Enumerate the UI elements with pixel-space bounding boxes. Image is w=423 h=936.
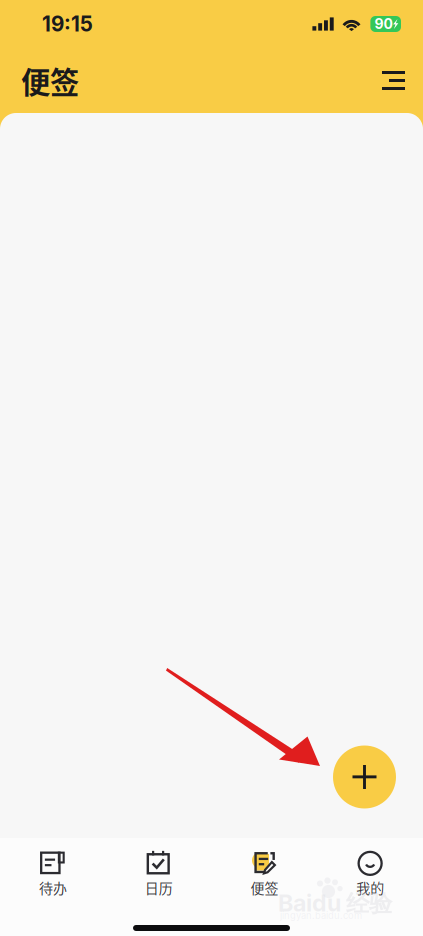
button[interactable]: 日历 bbox=[106, 833, 212, 905]
staticText: 便签 bbox=[250, 877, 278, 898]
button[interactable]: Add note bbox=[333, 744, 396, 810]
staticText: 90 bbox=[374, 15, 392, 32]
button[interactable]: 待办 bbox=[0, 833, 106, 905]
staticText: 便签 bbox=[21, 59, 79, 102]
staticText: jingyan.baidu.com bbox=[280, 910, 362, 921]
staticText: 待办 bbox=[39, 877, 67, 898]
staticText: Baidu 经验 bbox=[278, 889, 392, 918]
button[interactable]: 便签 bbox=[211, 833, 317, 905]
staticText: 日历 bbox=[145, 877, 173, 898]
staticText: 我的 bbox=[356, 877, 384, 898]
button[interactable]: 我的 bbox=[317, 833, 423, 905]
staticText: 19:15 bbox=[42, 11, 93, 36]
button[interactable]: Menu bbox=[375, 64, 412, 97]
